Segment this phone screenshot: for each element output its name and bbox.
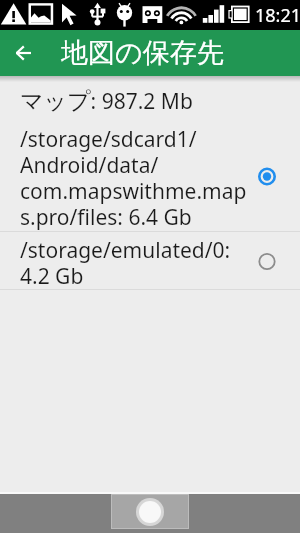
- button[interactable]: Back: [0, 30, 46, 76]
- staticText: /storage/sdcard1/ Android/data/ com.maps…: [20, 127, 247, 231]
- staticText: マップ: 987.2 Mb: [20, 89, 193, 116]
- staticText: /storage/emulated/0: 4.2 Gb: [20, 238, 231, 289]
- other: Selected: [257, 166, 277, 186]
- staticText: 地図の保存先: [61, 36, 224, 70]
- button[interactable]: /storage/sdcard1/ Android/data/ com.maps…: [0, 121, 300, 231]
- button[interactable]: Home: [111, 494, 189, 529]
- other: Not selected: [257, 251, 277, 271]
- staticText: 18:21: [255, 3, 300, 28]
- button[interactable]: /storage/emulated/0: 4.2 Gb: [0, 232, 300, 289]
